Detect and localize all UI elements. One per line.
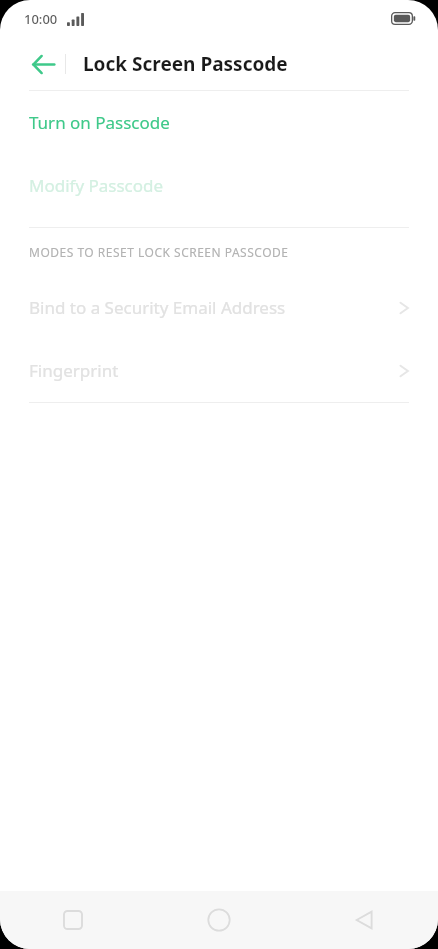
button[interactable]: Turn on Passcode	[0, 91, 438, 154]
staticText: Lock Screen Passcode	[83, 51, 288, 77]
button[interactable]: Back	[292, 891, 438, 949]
button[interactable]: Fingerprint	[0, 339, 438, 402]
staticText: Fingerprint	[29, 359, 119, 382]
button[interactable]: Back	[21, 42, 65, 86]
staticText: Turn on Passcode	[29, 111, 170, 134]
staticText: Bind to a Security Email Address	[29, 296, 286, 319]
button[interactable]: Recent apps	[0, 891, 146, 949]
button[interactable]: Bind to a Security Email Address	[0, 276, 438, 339]
staticText: Modify Passcode	[29, 174, 164, 197]
button[interactable]: Modify Passcode	[0, 154, 438, 217]
staticText: MODES TO RESET LOCK SCREEN PASSCODE	[29, 244, 289, 260]
staticText: 10:00	[24, 10, 58, 28]
